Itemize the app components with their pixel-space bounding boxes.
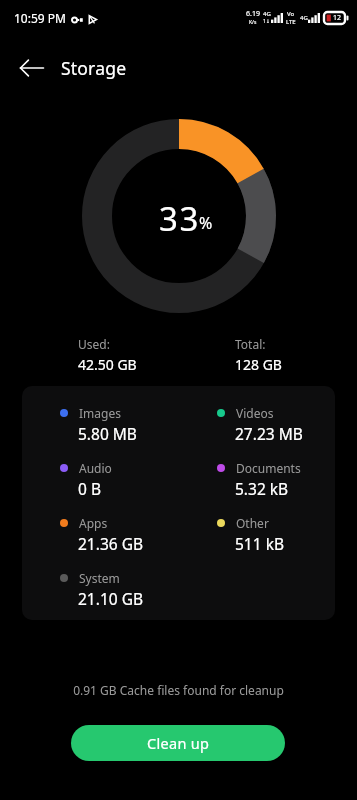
button[interactable]: Other bbox=[217, 515, 269, 554]
staticText: 4G bbox=[300, 14, 308, 22]
staticText: Videos bbox=[236, 405, 274, 421]
staticText: Audio bbox=[79, 460, 112, 476]
staticText: 5.32 kB bbox=[235, 478, 289, 499]
staticText: 21.10 GB bbox=[78, 588, 144, 609]
staticText: 42.50 GB bbox=[78, 355, 137, 374]
staticText: % bbox=[199, 212, 213, 234]
button[interactable]: Back bbox=[12, 48, 52, 88]
button[interactable]: Documents bbox=[217, 460, 301, 499]
staticText: 21.36 GB bbox=[78, 533, 144, 554]
staticText: Storage bbox=[61, 56, 127, 80]
staticText: 0 B bbox=[78, 478, 101, 499]
staticText: 128 GB bbox=[235, 355, 282, 374]
button[interactable]: Apps bbox=[60, 515, 126, 554]
button[interactable]: Clean up bbox=[71, 725, 285, 761]
staticText: Used: bbox=[78, 336, 110, 352]
staticText: Apps bbox=[79, 515, 108, 531]
staticText: 27.23 MB bbox=[235, 423, 303, 444]
staticText: Clean up bbox=[147, 733, 210, 753]
staticText: 12 bbox=[333, 13, 342, 23]
staticText: 10:59 PM bbox=[14, 10, 66, 26]
staticText: 511 kB bbox=[235, 533, 284, 554]
staticText: Images bbox=[79, 405, 121, 421]
staticText: System bbox=[79, 570, 120, 586]
button[interactable]: System bbox=[60, 570, 126, 609]
button[interactable]: Audio bbox=[60, 460, 112, 499]
staticText: Documents bbox=[236, 460, 301, 476]
staticText: 6.19 bbox=[246, 9, 260, 19]
staticText: K/s bbox=[249, 19, 257, 26]
staticText: 4G bbox=[263, 10, 271, 18]
button[interactable]: Images bbox=[60, 405, 121, 444]
staticText: Vo bbox=[287, 10, 295, 18]
button[interactable]: Videos bbox=[217, 405, 285, 444]
staticText: LTE bbox=[286, 18, 296, 26]
staticText: Other bbox=[236, 515, 269, 531]
staticText: 0.91 GB Cache files found for cleanup bbox=[0, 682, 357, 698]
staticText: 5.80 MB bbox=[78, 423, 137, 444]
staticText: Total: bbox=[235, 336, 266, 352]
staticText: 1↓ bbox=[263, 18, 271, 25]
staticText: 33 bbox=[159, 196, 200, 241]
